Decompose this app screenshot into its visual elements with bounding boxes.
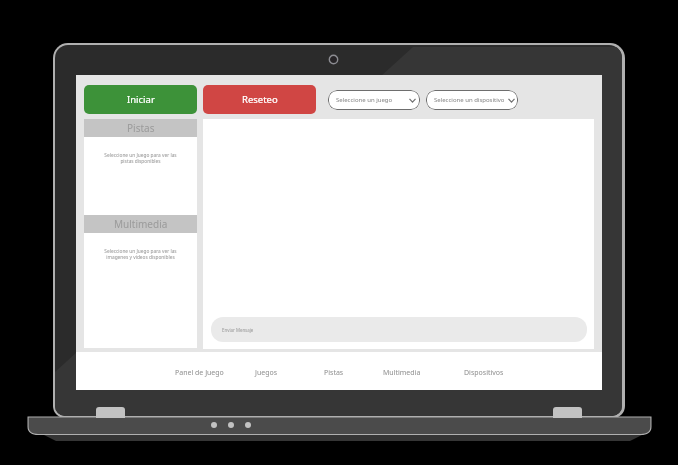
staticText: Seleccione un Juego para ver las imagene… [104,248,177,260]
staticText: Seleccione un Juego para ver las pistas … [104,152,177,164]
button[interactable]: Multimedia [84,215,197,233]
staticText: Seleccione un juego [336,96,393,104]
button[interactable]: Seleccione un dispositivo [426,90,518,110]
staticText: Multimedia [383,368,421,378]
staticText: Dispositivos [464,368,504,378]
staticText: Panel de Juego [175,368,224,378]
staticText: Multimedia [114,217,168,231]
button[interactable]: Enviar Mensaje [211,317,587,342]
button[interactable]: Iniciar [84,85,197,114]
other: Expandir [508,98,515,103]
staticText: Pistas [324,368,344,378]
button[interactable]: Panel de Juego [159,362,239,384]
staticText: Pistas [127,121,155,135]
button[interactable]: Pistas [294,362,374,384]
button[interactable]: Multimedia [362,362,442,384]
button[interactable]: Juegos [226,362,306,384]
button[interactable]: Pistas [84,119,197,137]
button[interactable]: Dispositivos [444,362,524,384]
button[interactable]: Reseteo [203,85,316,114]
staticText: Seleccione un dispositivo [434,96,505,104]
button[interactable]: Seleccione un juego [328,90,420,110]
staticText: Iniciar [127,93,155,106]
staticText: Reseteo [242,93,278,106]
staticText: Juegos [255,368,278,378]
other: Expandir [409,98,416,103]
staticText: Enviar Mensaje [222,327,254,333]
